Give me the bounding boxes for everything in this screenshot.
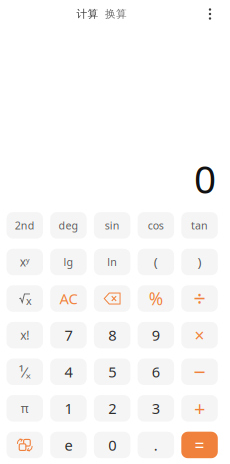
button[interactable]: =: [181, 432, 218, 458]
button[interactable]: 2: [94, 395, 130, 422]
staticText: x: [26, 294, 32, 308]
button[interactable]: 0: [94, 432, 130, 458]
staticText: ¹⁄ₓ: [19, 362, 31, 381]
staticText: ln: [107, 255, 117, 269]
staticText: ): [198, 253, 202, 271]
staticText: ×: [195, 324, 205, 347]
staticText: 1: [64, 399, 72, 418]
staticText: 4: [64, 362, 72, 381]
staticText: 2: [108, 399, 116, 418]
button[interactable]: ¹⁄ₓ: [6, 358, 43, 385]
button[interactable]: %: [138, 285, 174, 312]
staticText: .: [154, 435, 158, 455]
button[interactable]: cos: [138, 212, 174, 239]
staticText: 3: [152, 399, 160, 418]
staticText: =: [195, 433, 205, 456]
staticText: 5: [108, 362, 116, 381]
button[interactable]: 6: [138, 358, 174, 385]
staticText: π: [21, 400, 29, 416]
button[interactable]: 1: [50, 395, 87, 422]
button[interactable]: (: [138, 249, 174, 275]
button[interactable]: π: [6, 395, 43, 422]
button[interactable]: 2nd: [6, 212, 43, 239]
staticText: 换算: [105, 7, 127, 20]
button[interactable]: Unit conversion: [6, 432, 43, 458]
button[interactable]: xʸ: [6, 249, 43, 275]
staticText: 0: [108, 435, 116, 455]
button[interactable]: More options: [199, 3, 221, 25]
button[interactable]: 4: [50, 358, 87, 385]
button[interactable]: lg: [50, 249, 87, 275]
button[interactable]: 换算: [105, 5, 127, 23]
staticText: 8: [108, 325, 116, 345]
staticText: 6: [152, 362, 160, 381]
staticText: cos: [148, 218, 164, 232]
staticText: −: [194, 358, 206, 386]
button[interactable]: 9: [138, 322, 174, 348]
staticText: 2nd: [15, 218, 35, 232]
button[interactable]: ÷: [181, 285, 218, 312]
staticText: e: [64, 435, 72, 455]
staticText: (: [154, 253, 158, 271]
button[interactable]: ): [181, 249, 218, 275]
staticText: ÷: [194, 284, 206, 313]
button[interactable]: Delete: [94, 285, 130, 312]
staticText: 9: [152, 325, 160, 345]
button[interactable]: 7: [50, 322, 87, 348]
button[interactable]: x!: [6, 322, 43, 348]
staticText: 0: [194, 153, 216, 204]
staticText: xʸ: [20, 254, 30, 270]
staticText: tan: [191, 218, 208, 232]
button[interactable]: tan: [181, 212, 218, 239]
staticText: 计算: [77, 7, 99, 20]
button[interactable]: 5: [94, 358, 130, 385]
button[interactable]: 3: [138, 395, 174, 422]
button[interactable]: .: [138, 432, 174, 458]
button[interactable]: +: [181, 395, 218, 422]
staticText: x!: [20, 327, 29, 343]
button[interactable]: e: [50, 432, 87, 458]
button[interactable]: sin: [94, 212, 130, 239]
button[interactable]: AC: [50, 285, 87, 312]
button[interactable]: −: [181, 358, 218, 385]
button[interactable]: Square root: [6, 285, 43, 312]
staticText: %: [149, 287, 163, 310]
button[interactable]: 8: [94, 322, 130, 348]
staticText: lg: [63, 255, 73, 269]
staticText: AC: [59, 289, 77, 308]
staticText: 7: [64, 325, 72, 345]
staticText: sin: [105, 218, 120, 232]
staticText: +: [194, 395, 205, 422]
button[interactable]: 计算: [77, 5, 99, 23]
staticText: deg: [58, 218, 78, 232]
button[interactable]: deg: [50, 212, 87, 239]
button[interactable]: ln: [94, 249, 130, 275]
button[interactable]: ×: [181, 322, 218, 348]
